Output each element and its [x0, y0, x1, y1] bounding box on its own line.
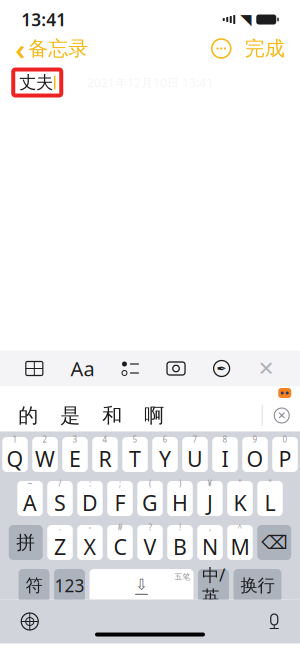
button[interactable]: 9: [242, 437, 268, 472]
staticText: M: [230, 533, 249, 561]
staticText: ^: [237, 522, 242, 533]
staticText: V: [143, 533, 156, 561]
button[interactable]: 3: [62, 437, 88, 472]
button[interactable]: 0: [272, 437, 298, 472]
staticText: 0: [282, 434, 287, 445]
button[interactable]: Close toolbar: [253, 352, 280, 385]
button[interactable]: -: [77, 525, 103, 560]
button[interactable]: Switch keyboard: [13, 605, 46, 638]
staticText: ⇩: [135, 576, 147, 593]
button[interactable]: 8: [212, 437, 238, 472]
button[interactable]: Checklist: [116, 356, 144, 381]
staticText: 4: [102, 434, 107, 445]
button[interactable]: .: [47, 525, 73, 560]
staticText: ⌫: [261, 532, 287, 553]
button[interactable]: 完成: [237, 32, 293, 65]
staticText: ~: [27, 478, 32, 489]
button[interactable]: ": [227, 481, 253, 516]
button[interactable]: Text format: [65, 350, 99, 387]
button[interactable]: ^: [227, 525, 253, 560]
button[interactable]: /: [47, 481, 73, 516]
button[interactable]: 换行: [233, 569, 281, 602]
button[interactable]: Camera: [161, 356, 190, 381]
button[interactable]: Delete: [257, 525, 291, 560]
staticText: N: [202, 533, 218, 561]
staticText: ": [268, 478, 271, 489]
staticText: 是: [60, 403, 80, 428]
button[interactable]: 符: [18, 569, 49, 602]
button[interactable]: :: [77, 481, 103, 516]
staticText: X: [83, 533, 96, 561]
button[interactable]: ": [257, 481, 283, 516]
staticText: 3: [72, 434, 77, 445]
staticText: (: [149, 478, 151, 489]
staticText: :: [89, 478, 91, 489]
staticText: B: [173, 533, 187, 561]
button[interactable]: Pinyin mode: [9, 525, 43, 560]
staticText: 和: [102, 403, 122, 428]
staticText: /: [58, 478, 61, 489]
staticText: .: [59, 522, 61, 533]
button[interactable]: !: [167, 525, 193, 560]
staticText: C: [113, 533, 126, 561]
button[interactable]: ): [167, 481, 193, 516]
staticText: S: [54, 489, 66, 517]
button[interactable]: Clear input: [263, 400, 300, 430]
button[interactable]: 6: [152, 437, 178, 472]
staticText: T: [129, 445, 141, 473]
button[interactable]: 2: [32, 437, 58, 472]
staticText: Z: [54, 533, 66, 561]
staticText: 的: [18, 403, 38, 428]
staticText: H: [172, 489, 188, 517]
button[interactable]: #: [107, 525, 133, 560]
staticText: D: [82, 489, 98, 517]
staticText: 啊: [144, 403, 164, 428]
button[interactable]: ~: [17, 481, 43, 516]
button[interactable]: Space: [89, 569, 193, 602]
staticText: !: [179, 522, 181, 533]
staticText: J: [207, 489, 213, 517]
button[interactable]: ¥: [197, 481, 223, 516]
button[interactable]: ‹: [7, 25, 96, 72]
button[interactable]: 5: [122, 437, 148, 472]
staticText: G: [142, 489, 158, 517]
staticText: E: [69, 445, 81, 473]
staticText: 5: [132, 434, 137, 445]
staticText: ;: [119, 478, 121, 489]
staticText: 7: [192, 434, 197, 445]
button[interactable]: 1: [2, 437, 28, 472]
button[interactable]: 啊: [133, 400, 175, 430]
staticText: #: [117, 522, 122, 533]
button[interactable]: 7: [182, 437, 208, 472]
button[interactable]: Insert table: [20, 356, 48, 381]
button[interactable]: Dictation: [262, 606, 287, 637]
staticText: ,: [209, 522, 211, 533]
staticText: Q: [6, 445, 23, 473]
button[interactable]: 和: [91, 400, 133, 430]
staticText: -: [88, 522, 91, 533]
button[interactable]: 是: [49, 400, 91, 430]
button[interactable]: 123: [54, 569, 85, 602]
button[interactable]: Markup: [208, 355, 236, 381]
button[interactable]: (: [137, 481, 163, 516]
staticText: ?: [148, 522, 151, 533]
staticText: 丈夫: [19, 72, 53, 93]
button[interactable]: ;: [107, 481, 133, 516]
staticText: 2: [42, 434, 47, 445]
button[interactable]: 中/英: [198, 569, 229, 602]
button[interactable]: 4: [92, 437, 118, 472]
button[interactable]: 的: [7, 400, 49, 430]
staticText: ✒: [217, 362, 227, 375]
staticText: R: [98, 445, 111, 473]
staticText: 9: [252, 434, 257, 445]
staticText: 符: [25, 575, 42, 596]
staticText: ◥: [240, 11, 251, 28]
staticText: W: [35, 445, 55, 473]
staticText: 拼: [16, 531, 35, 554]
staticText: 五笔: [174, 572, 190, 582]
button[interactable]: ,: [197, 525, 223, 560]
button[interactable]: More options: [206, 33, 237, 64]
button[interactable]: ?: [137, 525, 163, 560]
staticText: 13:41: [21, 8, 66, 31]
